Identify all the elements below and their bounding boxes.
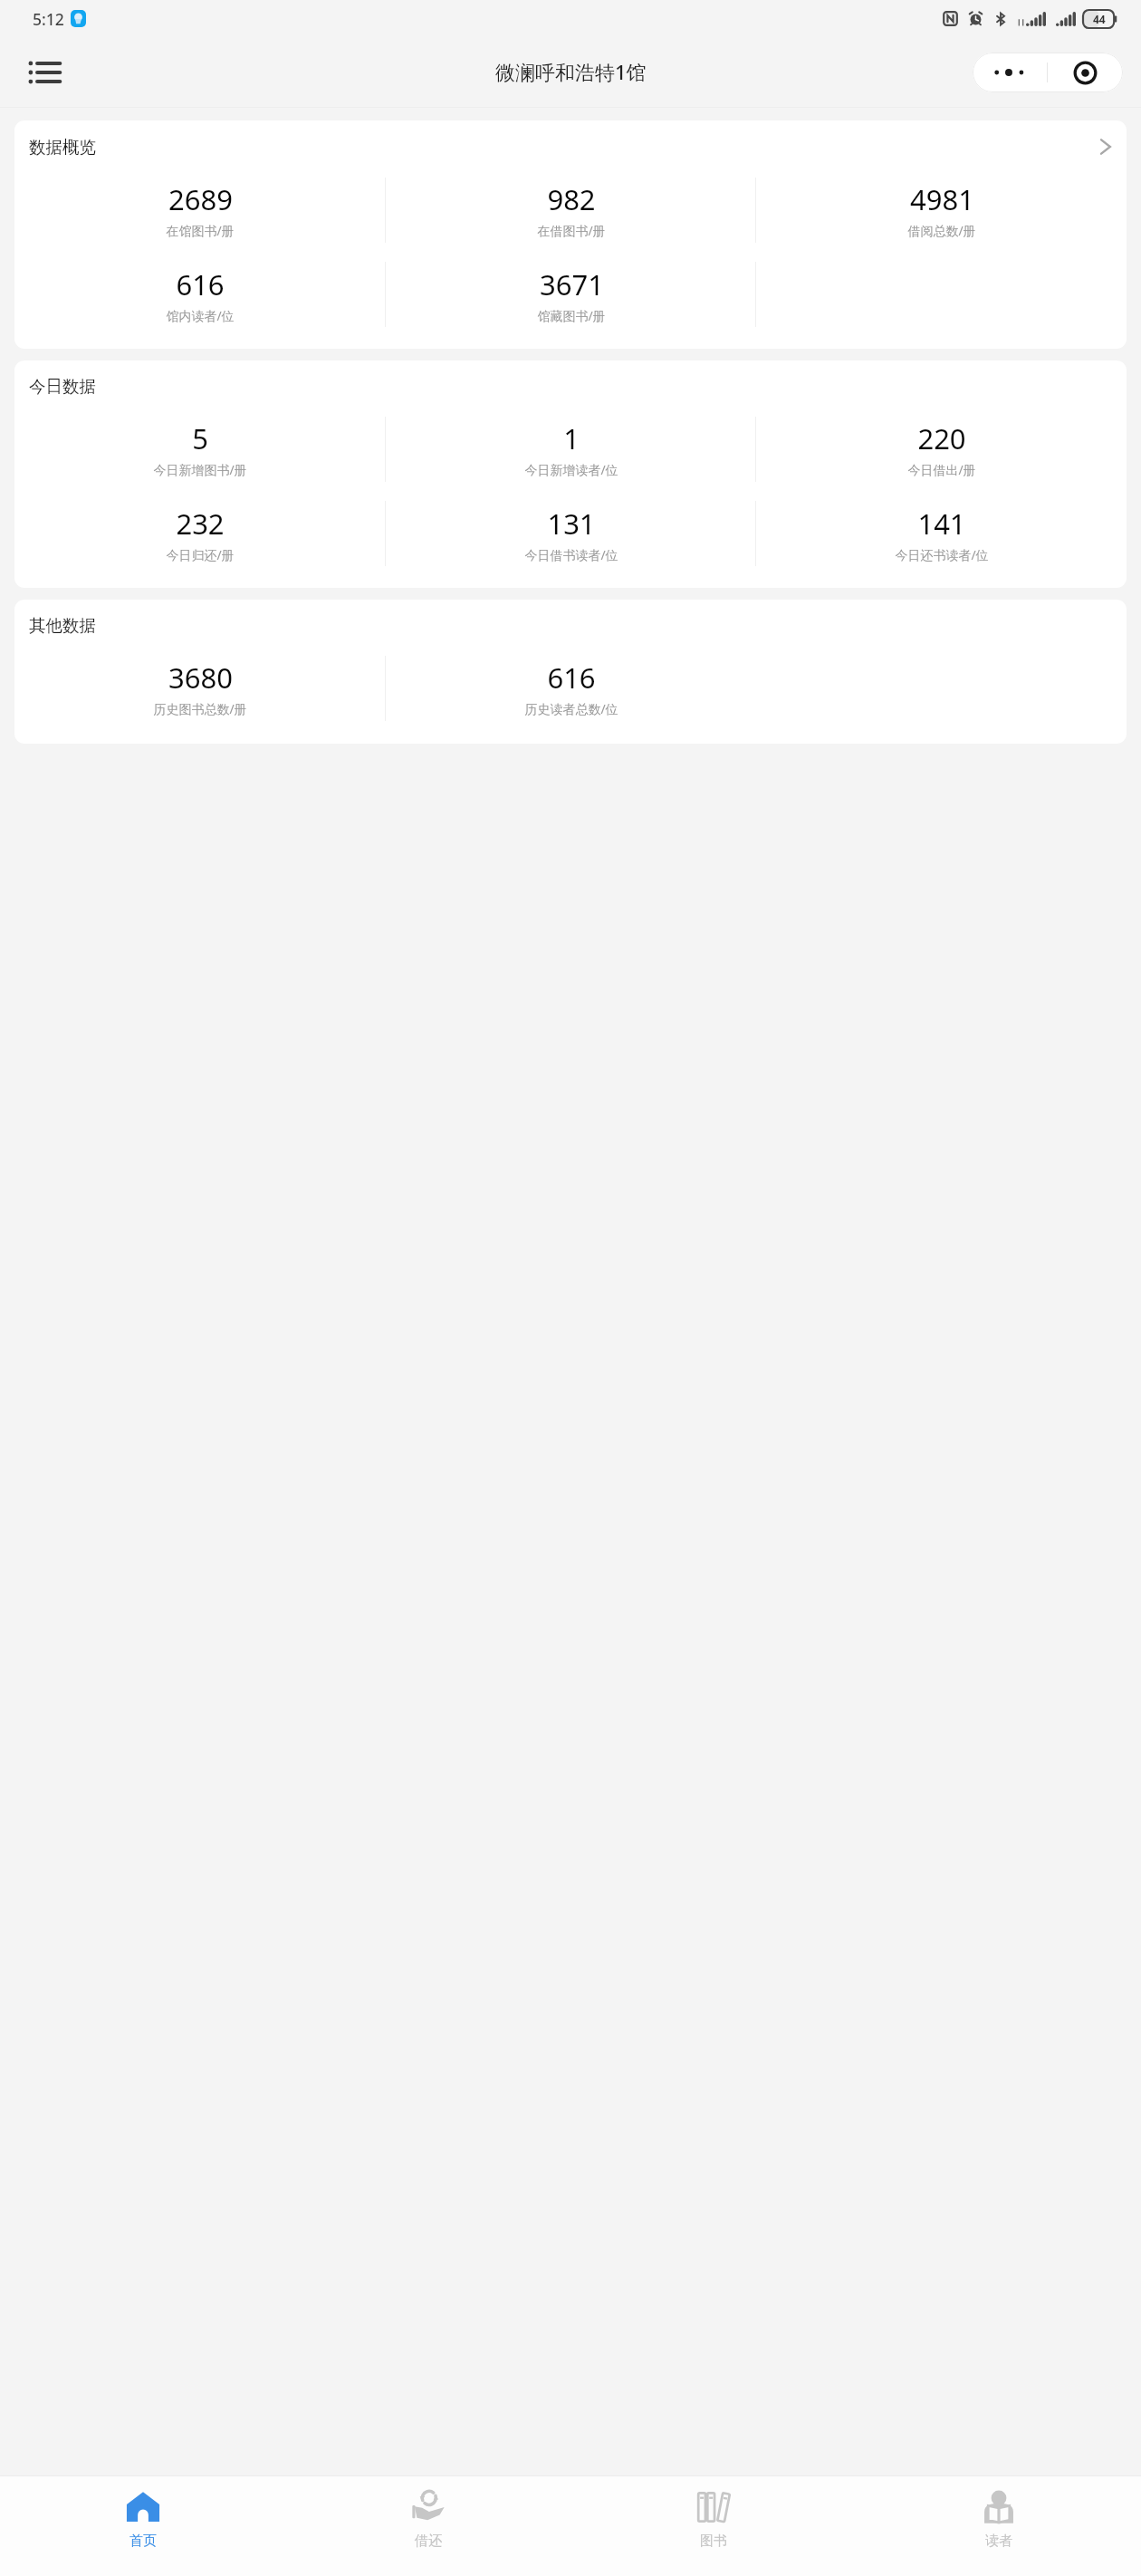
staticText: 616 (176, 265, 225, 303)
staticText: 44 (1093, 12, 1106, 26)
staticText: 借阅总数/册 (907, 222, 976, 239)
staticText: 220 (917, 419, 966, 457)
staticText: 今日新增读者/位 (524, 461, 618, 478)
staticText: 1 (563, 419, 580, 457)
button[interactable]: 其他数据 (14, 600, 1127, 744)
staticText: 其他数据 (29, 615, 96, 636)
staticText: 5:12 (33, 8, 64, 30)
staticText: 5 (192, 419, 208, 457)
staticText: 馆藏图书/册 (537, 307, 606, 324)
staticText: 131 (547, 505, 596, 543)
staticText: 982 (547, 180, 596, 218)
staticText: 在借图书/册 (537, 222, 606, 239)
staticText: 3680 (168, 658, 233, 697)
button[interactable]: 数据概览 (14, 120, 1127, 349)
staticText: 微澜呼和浩特1馆 (495, 58, 647, 85)
staticText: 在馆图书/册 (166, 222, 235, 239)
staticText: 今日借出/册 (907, 461, 976, 478)
button[interactable]: 胶囊按钮 (1048, 53, 1123, 92)
staticText: 3671 (540, 265, 604, 303)
button[interactable]: 今日数据 (14, 360, 1127, 588)
staticText: 2689 (168, 180, 233, 218)
button[interactable]: 借还 (285, 2476, 570, 2576)
staticText: 馆内读者/位 (166, 307, 235, 324)
button[interactable]: 读者 (856, 2476, 1141, 2576)
staticText: 历史图书总数/册 (153, 700, 247, 717)
button[interactable]: 更多 (973, 53, 1047, 92)
button[interactable]: 首页 (0, 2476, 285, 2576)
button[interactable]: 图书 (570, 2476, 856, 2576)
staticText: 141 (917, 505, 966, 543)
staticText: 4981 (910, 180, 974, 218)
staticText: 读者 (985, 2533, 1012, 2550)
staticText: 今日数据 (29, 376, 96, 397)
staticText: 今日借书读者/位 (524, 546, 618, 563)
staticText: 616 (547, 658, 596, 697)
staticText: 今日还书读者/位 (895, 546, 989, 563)
staticText: 数据概览 (29, 137, 96, 158)
staticText: 首页 (129, 2533, 157, 2550)
staticText: 借还 (415, 2533, 442, 2550)
staticText: 232 (176, 505, 225, 543)
staticText: 今日新增图书/册 (153, 461, 247, 478)
staticText: 历史读者总数/位 (524, 700, 618, 717)
staticText: 今日归还/册 (166, 546, 235, 563)
button[interactable]: 菜单 (18, 46, 71, 99)
staticText: 图书 (700, 2533, 727, 2550)
